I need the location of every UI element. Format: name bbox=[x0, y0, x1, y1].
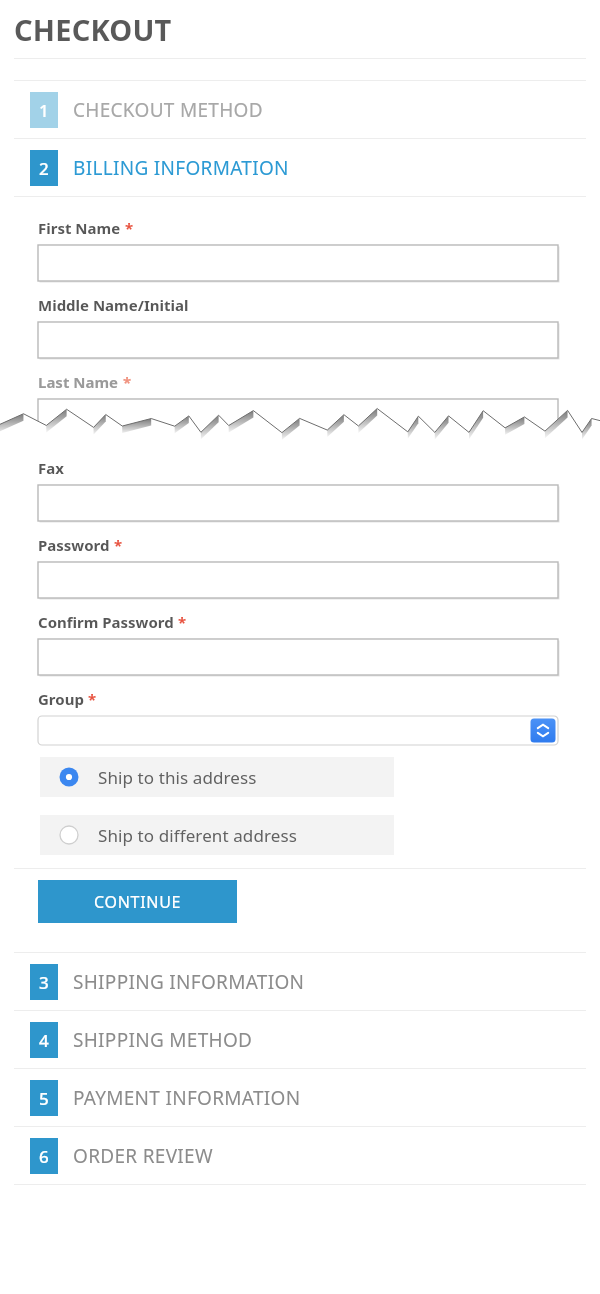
staticText: Ship to this address bbox=[98, 766, 257, 789]
staticText: * bbox=[178, 612, 187, 632]
button[interactable]: 5 bbox=[0, 1069, 600, 1126]
staticText: ORDER REVIEW bbox=[73, 1143, 213, 1169]
staticText: Group bbox=[38, 689, 84, 709]
button[interactable] bbox=[38, 245, 558, 281]
staticText: 5 bbox=[39, 1087, 49, 1110]
staticText: SHIPPING METHOD bbox=[73, 1027, 253, 1053]
staticText: 2 bbox=[39, 157, 49, 180]
staticText: * bbox=[88, 689, 97, 709]
staticText: First Name bbox=[38, 218, 121, 238]
staticText: PAYMENT INFORMATION bbox=[73, 1085, 301, 1111]
staticText: 6 bbox=[39, 1145, 49, 1168]
button[interactable]: Ship to different address bbox=[40, 815, 394, 855]
button[interactable] bbox=[38, 485, 558, 521]
staticText: Fax bbox=[38, 458, 64, 478]
staticText: * bbox=[125, 218, 134, 238]
button[interactable]: Ship to this address bbox=[40, 757, 394, 797]
button[interactable]: 6 bbox=[0, 1127, 600, 1184]
button[interactable]: 2 bbox=[0, 139, 600, 196]
button[interactable]: 3 bbox=[0, 953, 600, 1010]
staticText: * bbox=[123, 372, 132, 392]
staticText: 1 bbox=[39, 99, 49, 122]
button[interactable] bbox=[38, 562, 558, 598]
button[interactable] bbox=[38, 639, 558, 675]
button[interactable]: 4 bbox=[0, 1011, 600, 1068]
staticText: Password bbox=[38, 535, 110, 555]
button[interactable]: CONTINUE bbox=[38, 880, 237, 923]
staticText: CHECKOUT METHOD bbox=[73, 97, 263, 123]
button[interactable] bbox=[38, 322, 558, 358]
button[interactable]: 1 bbox=[0, 81, 600, 138]
staticText: * bbox=[114, 535, 123, 555]
staticText: CHECKOUT bbox=[14, 10, 172, 49]
staticText: SHIPPING INFORMATION bbox=[73, 969, 305, 995]
staticText: Middle Name/Initial bbox=[38, 295, 189, 315]
staticText: BILLING INFORMATION bbox=[73, 155, 289, 181]
staticText: Last Name bbox=[38, 372, 119, 392]
staticText: Confirm Password bbox=[38, 612, 174, 632]
staticText: 3 bbox=[39, 971, 49, 994]
staticText: CONTINUE bbox=[94, 891, 182, 913]
button[interactable]: Group bbox=[38, 716, 558, 745]
staticText: 4 bbox=[39, 1029, 49, 1052]
staticText: Ship to different address bbox=[98, 824, 297, 847]
